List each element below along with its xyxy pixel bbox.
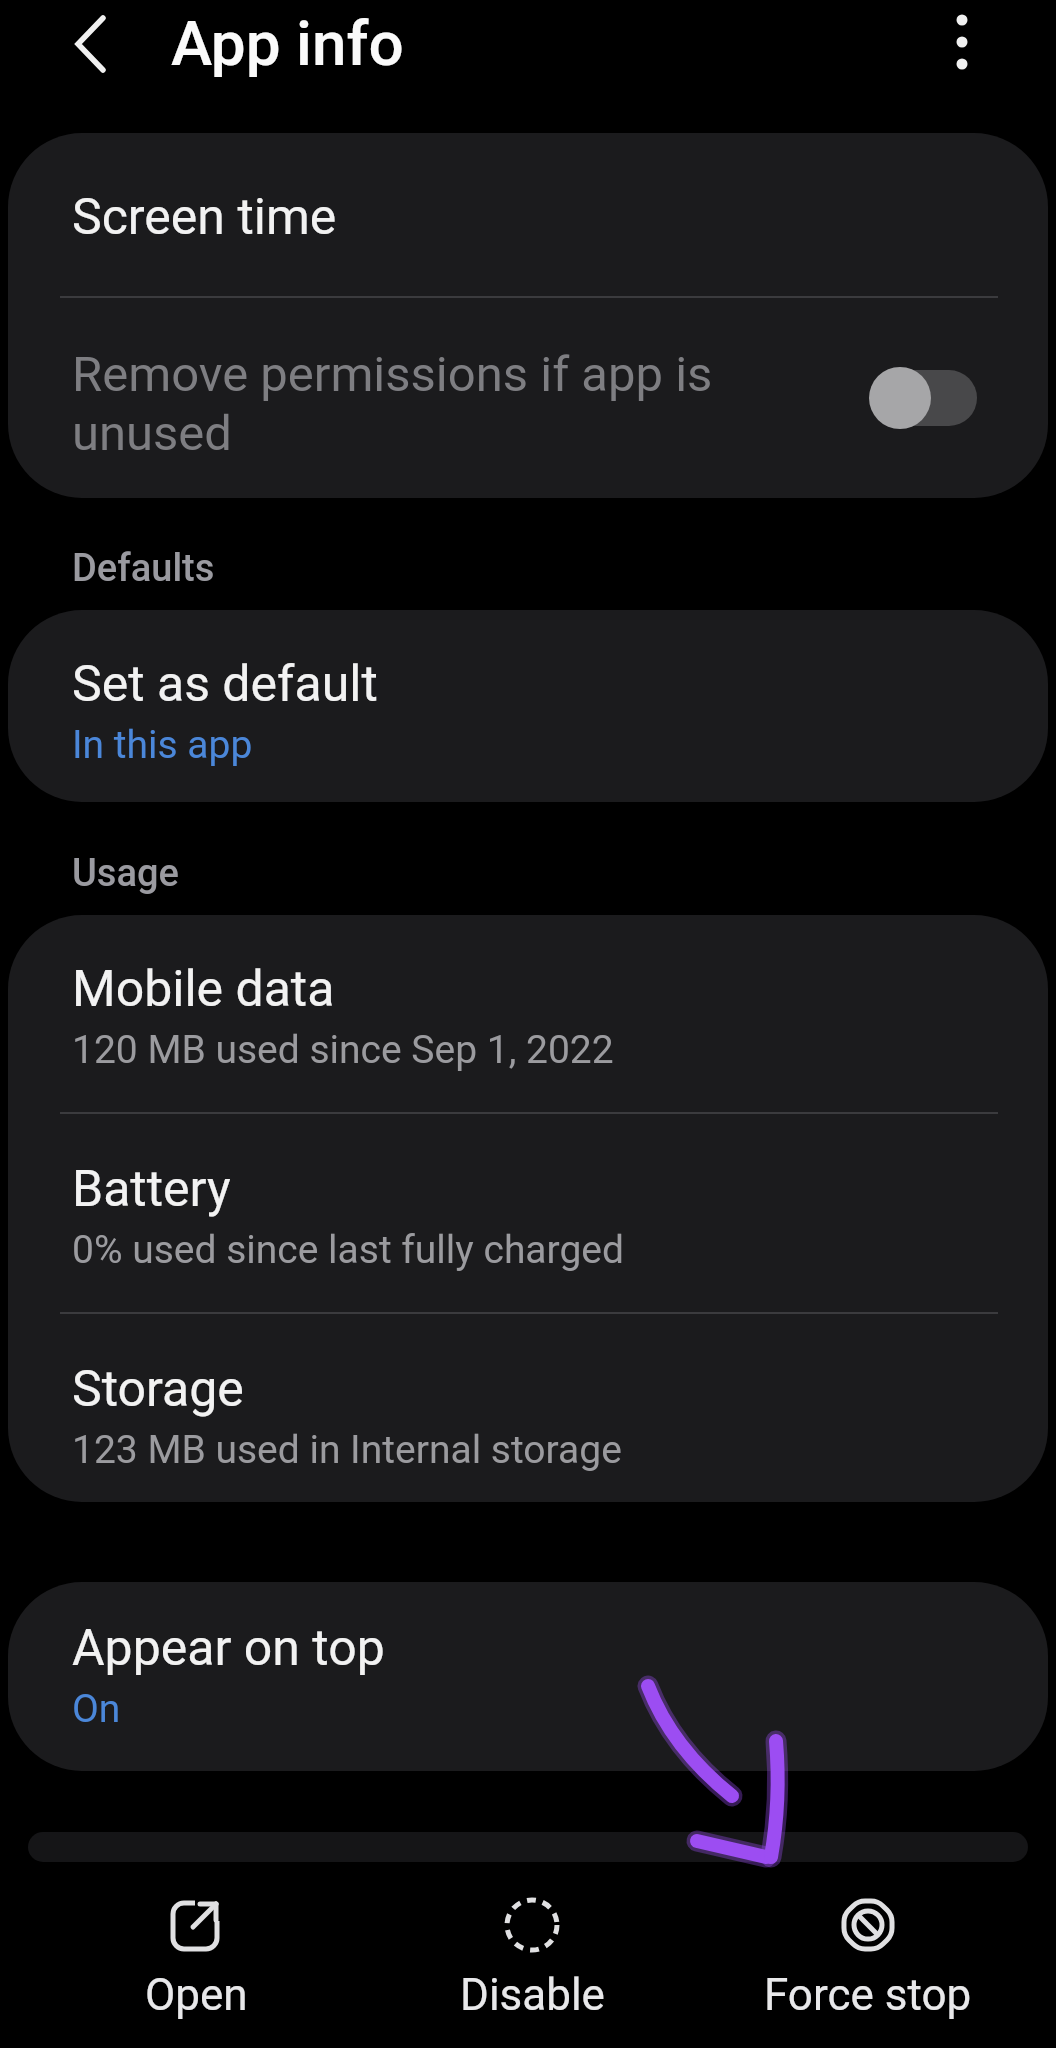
button[interactable]: Screen time [8, 133, 1048, 296]
staticText: Remove permissions if app is unused [72, 346, 869, 462]
button[interactable]: Set as default [8, 610, 1048, 768]
staticText: Mobile data [72, 960, 335, 1019]
button[interactable]: Disable [364, 1862, 700, 2021]
staticText: Set as default [72, 655, 378, 714]
staticText: Screen time [72, 188, 337, 247]
staticText: Appear on top [72, 1619, 385, 1678]
staticText: 120 MB used since Sep 1, 2022 [72, 1027, 614, 1073]
button[interactable] [938, 0, 986, 96]
staticText: On [72, 1686, 121, 1732]
button[interactable] [61, 0, 121, 96]
button[interactable]: Mobile data [8, 915, 1048, 1073]
staticText: Storage [72, 1360, 244, 1419]
staticText: Disable [460, 1969, 605, 2021]
button[interactable]: Appear on top [8, 1582, 1048, 1732]
button[interactable]: Open [28, 1862, 364, 2021]
button[interactable]: Force stop [700, 1862, 1036, 2021]
button[interactable]: Battery [8, 1114, 1048, 1273]
staticText: Force stop [764, 1969, 972, 2021]
staticText: 0% used since last fully charged [72, 1227, 624, 1273]
staticText: Battery [72, 1160, 231, 1219]
button[interactable]: Remove permissions if app is unused [8, 298, 1048, 498]
button[interactable]: Storage [8, 1314, 1048, 1473]
staticText: In this app [72, 722, 253, 768]
staticText: Usage [72, 851, 179, 896]
staticText: App info [171, 7, 404, 80]
staticText: 123 MB used in Internal storage [72, 1427, 622, 1473]
staticText: Defaults [72, 546, 215, 591]
staticText: Open [145, 1969, 248, 2021]
